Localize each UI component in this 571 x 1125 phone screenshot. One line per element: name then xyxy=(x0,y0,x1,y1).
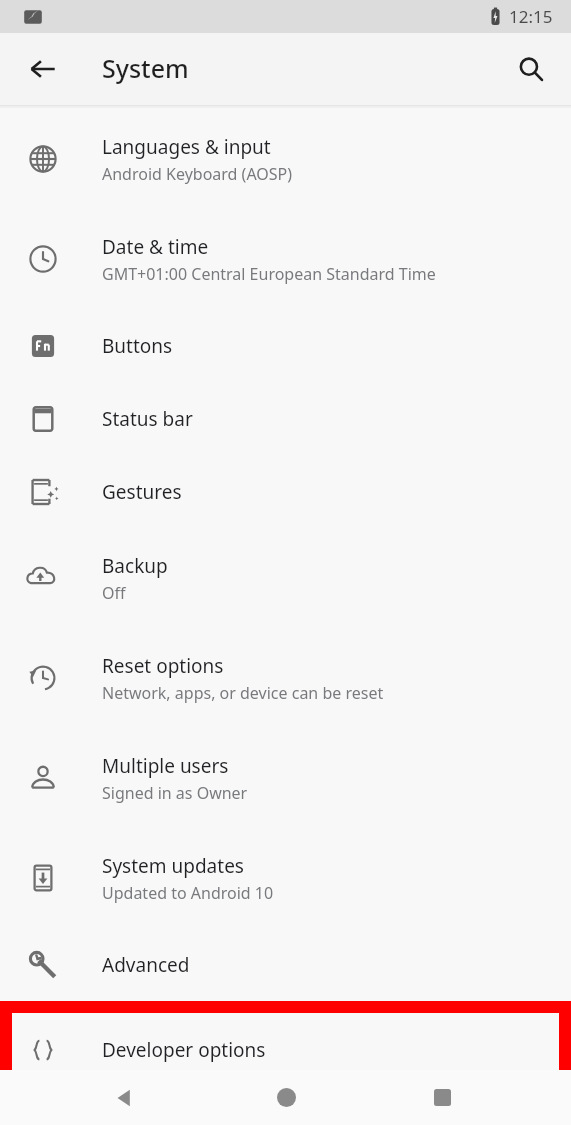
staticText: Multiple users xyxy=(102,753,229,779)
button[interactable]: System updates xyxy=(0,828,571,928)
button[interactable]: Reset options xyxy=(0,628,571,728)
staticText: Android Keyboard (AOSP) xyxy=(102,163,293,185)
staticText: Languages & input xyxy=(102,134,271,160)
button[interactable]: Advanced xyxy=(0,928,571,1001)
staticText: System updates xyxy=(102,853,244,879)
button[interactable]: Multiple users xyxy=(0,728,571,828)
button[interactable]: Languages & input xyxy=(0,109,571,209)
staticText: Reset options xyxy=(102,653,224,679)
button[interactable]: Backup xyxy=(0,528,571,628)
staticText: Updated to Android 10 xyxy=(102,882,274,904)
button[interactable]: Status bar xyxy=(0,382,571,455)
button[interactable]: Back xyxy=(17,43,69,95)
staticText: Off xyxy=(102,582,126,604)
button[interactable]: Recent apps xyxy=(414,1070,470,1125)
button[interactable]: Search xyxy=(505,43,557,95)
staticText: Network, apps, or device can be reset xyxy=(102,682,384,704)
button[interactable]: Date & time xyxy=(0,209,571,309)
staticText: Buttons xyxy=(102,333,173,359)
staticText: GMT+01:00 Central European Standard Time xyxy=(102,263,436,285)
staticText: Status bar xyxy=(102,406,193,432)
staticText: System xyxy=(102,51,189,85)
button[interactable]: Home xyxy=(258,1070,314,1125)
button[interactable]: Developer options xyxy=(0,1001,571,1098)
button[interactable]: Buttons xyxy=(0,309,571,382)
staticText: Advanced xyxy=(102,952,190,978)
staticText: Backup xyxy=(102,553,168,579)
button[interactable]: Back xyxy=(97,1070,153,1125)
staticText: 12:15 xyxy=(509,5,553,28)
staticText: Developer options xyxy=(102,1037,266,1063)
staticText: Signed in as Owner xyxy=(102,782,248,804)
button[interactable]: Gestures xyxy=(0,455,571,528)
staticText: Gestures xyxy=(102,479,182,505)
staticText: Date & time xyxy=(102,234,209,260)
